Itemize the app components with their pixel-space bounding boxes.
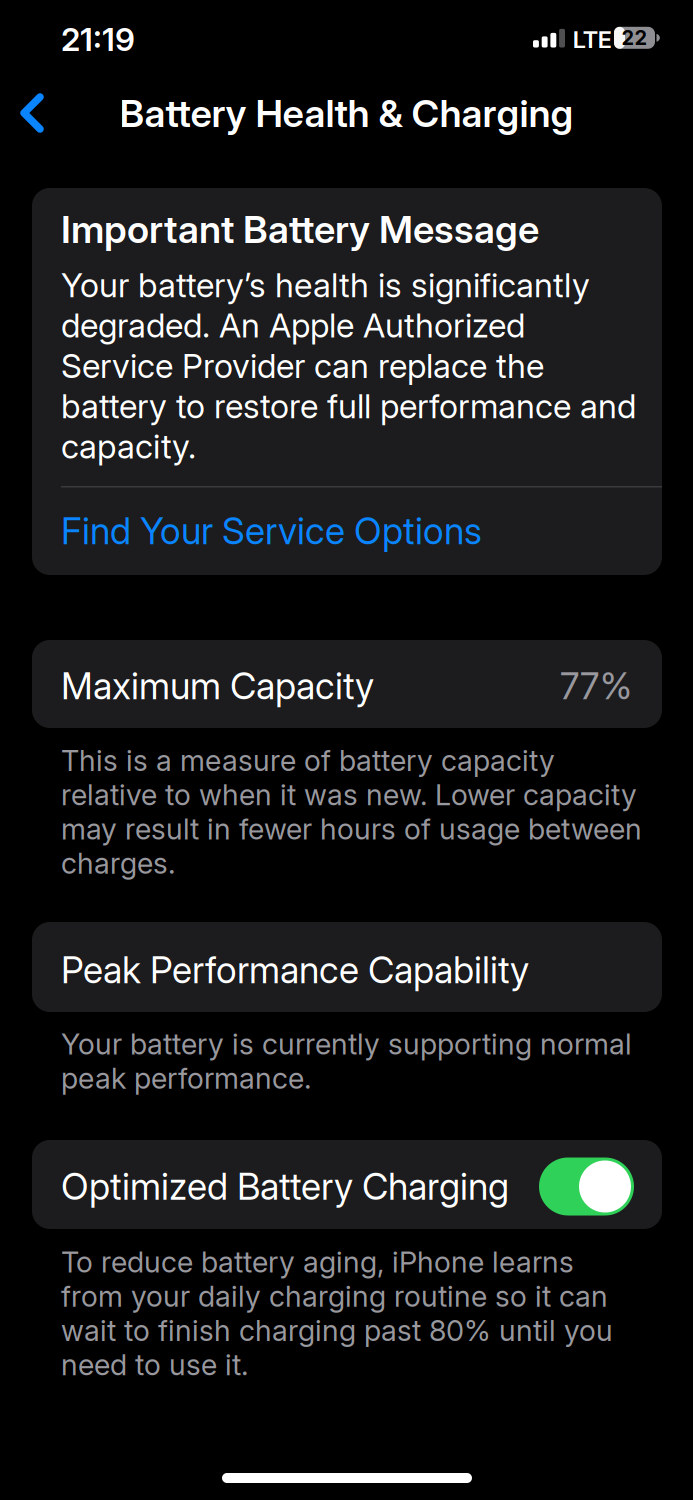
button[interactable]: Optimized Battery Charging xyxy=(539,1157,634,1215)
staticText: Find Your Service Options xyxy=(61,509,482,553)
button[interactable]: Find Your Service Options xyxy=(61,487,662,575)
staticText: 22 xyxy=(621,26,647,50)
staticText: To reduce battery aging, iPhone learns f… xyxy=(61,1244,613,1382)
staticText: LTE xyxy=(573,25,612,54)
staticText: Your battery’s health is significantly d… xyxy=(61,265,636,467)
staticText: 77% xyxy=(560,664,632,708)
staticText: 21:19 xyxy=(61,20,135,59)
staticText: Peak Performance Capability xyxy=(61,948,529,992)
staticText: Maximum Capacity xyxy=(61,664,374,708)
staticText: Important Battery Message xyxy=(61,206,539,252)
staticText: Battery Health & Charging xyxy=(119,90,573,136)
staticText: Your battery is currently supporting nor… xyxy=(61,1026,632,1096)
button[interactable]: Back xyxy=(0,92,64,134)
staticText: This is a measure of battery capacity re… xyxy=(61,743,642,881)
staticText: Optimized Battery Charging xyxy=(61,1164,509,1209)
